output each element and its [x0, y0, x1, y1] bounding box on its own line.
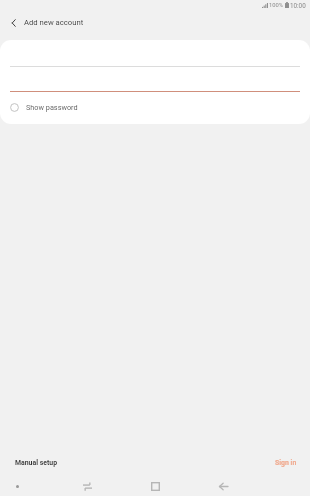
- staticText: Add new account: [24, 18, 84, 27]
- staticText: 100%: [269, 2, 284, 9]
- staticText: Sign in: [275, 459, 297, 467]
- button[interactable]: Manual setup: [15, 455, 58, 471]
- staticText: Manual setup: [15, 459, 58, 467]
- button[interactable]: Email address: [10, 45, 300, 67]
- button[interactable]: Password: [10, 70, 300, 92]
- button[interactable]: Recents: [70, 474, 104, 496]
- button[interactable]: Menu: [0, 474, 34, 496]
- staticText: Show password: [26, 103, 78, 112]
- button[interactable]: Show password: [10, 98, 78, 117]
- staticText: 10:00: [290, 2, 306, 9]
- button[interactable]: Back: [206, 474, 240, 496]
- button[interactable]: Home: [138, 474, 172, 496]
- button[interactable]: Sign in: [275, 455, 297, 471]
- button[interactable]: Navigate up: [3, 12, 25, 34]
